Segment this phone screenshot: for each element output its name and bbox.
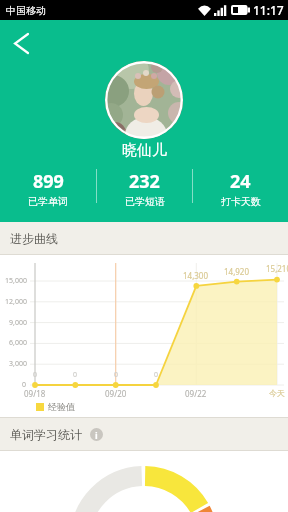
staticText: 中国移动 <box>6 4 46 17</box>
staticText: 15,210 <box>266 263 288 274</box>
staticText: 15,000 <box>5 276 27 286</box>
staticText: 9,000 <box>9 318 27 328</box>
button[interactable]: 单词学习统计 <box>0 417 288 451</box>
staticText: 11:17 <box>253 2 284 18</box>
staticText: 14,920 <box>224 266 250 277</box>
staticText: 09/18 <box>24 388 46 399</box>
staticText: 899 <box>33 169 64 194</box>
staticText: 24 <box>230 169 251 194</box>
staticText: 晓仙儿 <box>122 141 167 160</box>
button[interactable] <box>105 61 183 139</box>
staticText: 进步曲线 <box>10 231 58 246</box>
button[interactable]: 24 <box>193 169 288 208</box>
staticText: 232 <box>129 169 160 194</box>
staticText: 0 <box>114 370 119 380</box>
button[interactable]: 232 <box>97 169 192 208</box>
staticText: i <box>95 429 98 441</box>
staticText: 09/22 <box>185 388 207 399</box>
staticText: 6,000 <box>9 338 27 348</box>
button[interactable]: 899 <box>0 169 96 208</box>
staticText: 09/20 <box>105 388 127 399</box>
button[interactable] <box>6 28 36 58</box>
staticText: 0 <box>154 370 159 380</box>
staticText: 经验值 <box>48 401 75 412</box>
staticText: 0 <box>73 370 78 380</box>
staticText: 已学短语 <box>125 195 165 208</box>
staticText: 打卡天数 <box>221 195 261 208</box>
staticText: 单词学习统计 <box>10 427 82 442</box>
staticText: 14,300 <box>183 270 209 281</box>
staticText: 已学单词 <box>28 195 68 208</box>
staticText: 3,000 <box>9 359 27 369</box>
staticText: 12,000 <box>5 297 27 307</box>
staticText: 0 <box>33 370 38 380</box>
staticText: 0 <box>22 380 27 390</box>
staticText: 今天 <box>269 388 285 398</box>
